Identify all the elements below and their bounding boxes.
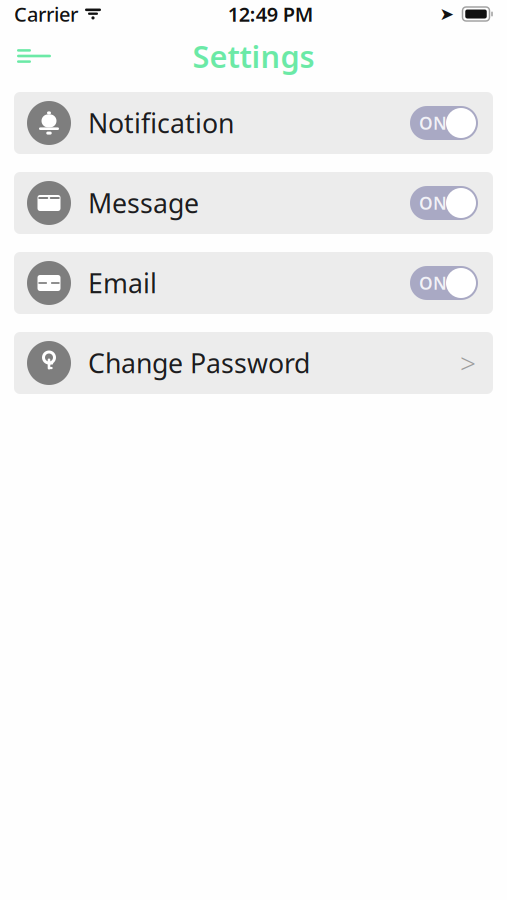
staticText: Email [88, 265, 157, 301]
staticText: Settings [192, 36, 314, 76]
button[interactable]: Change Password [14, 332, 493, 394]
staticText: 12:49 PM [228, 1, 314, 27]
staticText: Message [88, 185, 199, 221]
button[interactable]: Email [14, 252, 493, 314]
staticText: Carrier [14, 1, 78, 27]
staticText: Change Password [88, 345, 310, 381]
staticText: ➤ [439, 4, 454, 24]
staticText: ON [419, 111, 447, 134]
staticText: ON [419, 191, 447, 214]
staticText: > [460, 344, 476, 382]
button[interactable]: Back [11, 36, 57, 76]
staticText: ON [419, 271, 447, 294]
button[interactable]: Toggle, on [410, 266, 478, 300]
staticText: Notification [88, 105, 234, 141]
button[interactable]: Notification [14, 92, 493, 154]
button[interactable]: Toggle, on [410, 186, 478, 220]
button[interactable]: Message [14, 172, 493, 234]
button[interactable]: Toggle, on [410, 106, 478, 140]
